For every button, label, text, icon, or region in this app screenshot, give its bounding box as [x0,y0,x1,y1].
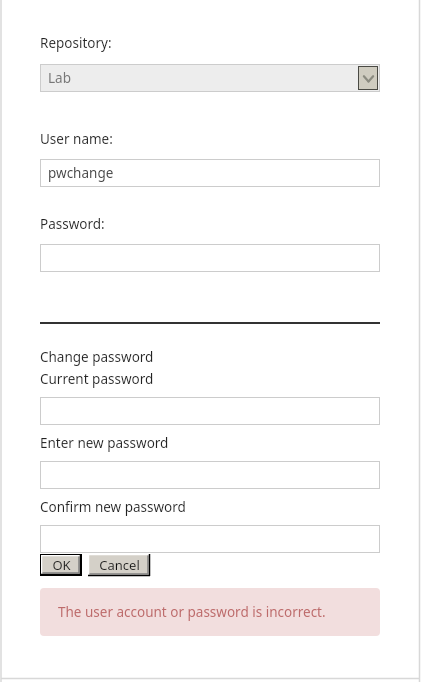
button[interactable]: Cancel [88,554,150,576]
staticText: Enter new password [40,434,169,452]
button[interactable] [40,461,380,489]
staticText: The user account or password is incorrec… [58,603,326,621]
staticText: Current password [40,370,154,388]
staticText: Cancel [99,556,140,574]
button[interactable] [40,525,380,553]
other: Open repository list [358,66,378,90]
button[interactable]: Lab [40,64,380,92]
staticText: Password: [40,215,105,233]
staticText: Repository: [40,34,112,52]
staticText: OK [52,556,71,574]
staticText: User name: [40,130,113,148]
button[interactable] [40,397,380,425]
staticText: Lab [48,69,71,87]
button[interactable]: pwchange [40,159,380,187]
button[interactable]: OK [41,555,81,575]
staticText: Confirm new password [40,498,186,516]
button[interactable] [40,244,380,272]
staticText: pwchange [48,164,114,182]
staticText: Change password [40,348,154,366]
